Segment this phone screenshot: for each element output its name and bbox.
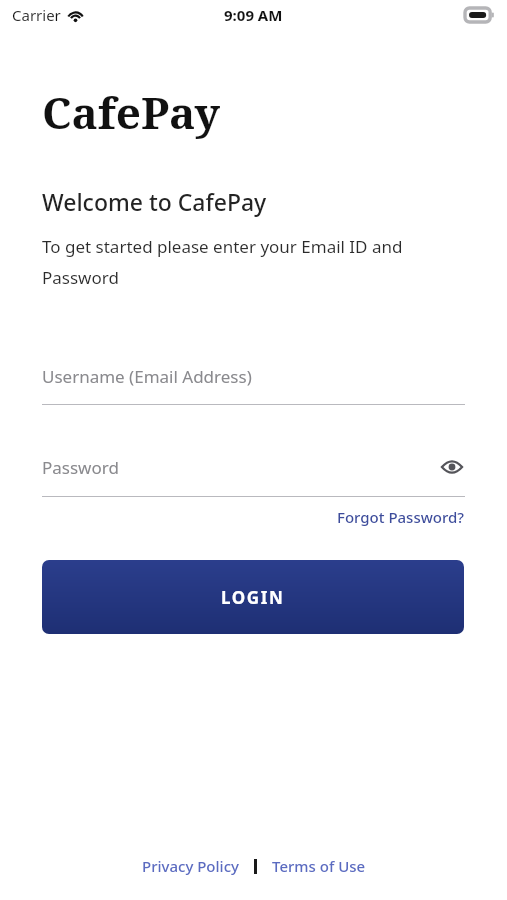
button[interactable]: Terms of Use — [270, 852, 368, 880]
staticText: Password — [42, 456, 439, 479]
staticText: Welcome to CafePay — [42, 186, 267, 217]
button[interactable]: Username (Email Address) — [42, 365, 465, 405]
staticText: Carrier — [12, 5, 61, 25]
staticText: 9:09 AM — [224, 5, 283, 25]
staticText: To get started please enter your Email I… — [42, 235, 463, 289]
staticText: Forgot Password? — [337, 507, 465, 527]
button[interactable]: Forgot Password? — [337, 503, 465, 531]
staticText: CafePay — [42, 82, 220, 142]
staticText: Username (Email Address) — [42, 365, 465, 388]
button[interactable]: LOGIN — [42, 560, 464, 634]
button[interactable]: Privacy Policy — [140, 852, 241, 880]
button[interactable]: Password — [42, 454, 465, 497]
staticText: LOGIN — [221, 586, 285, 609]
staticText: Privacy Policy — [142, 856, 239, 876]
staticText: Terms of Use — [272, 856, 366, 876]
button[interactable]: Show password — [439, 454, 465, 480]
